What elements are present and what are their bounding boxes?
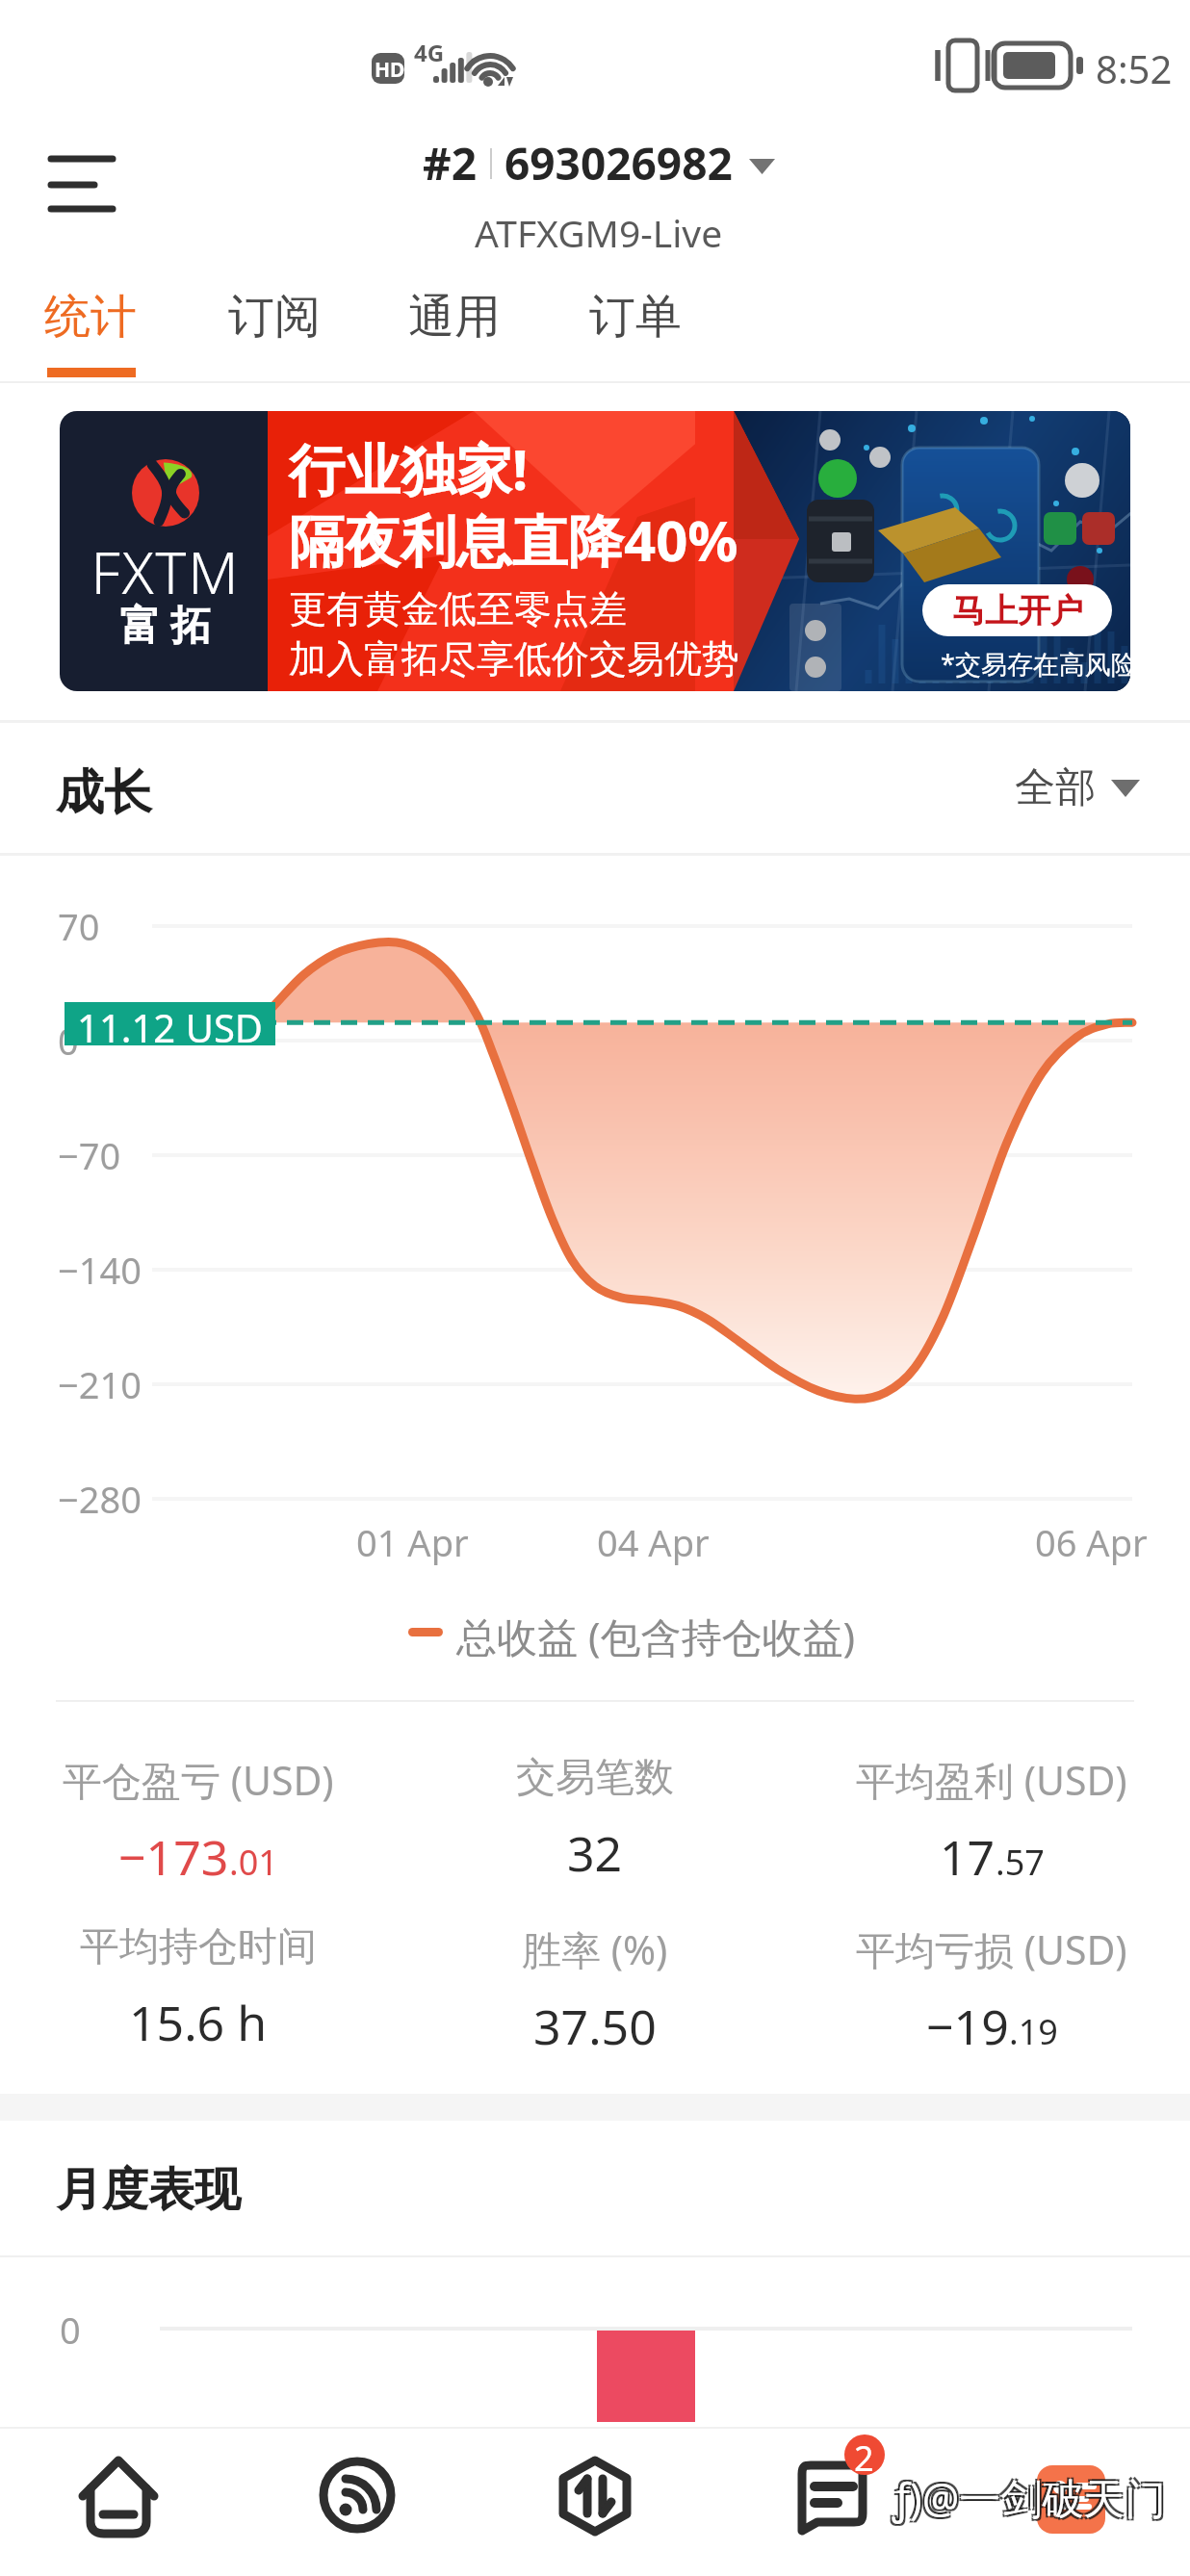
staticText: −140 <box>58 1245 142 1295</box>
staticText: ATFXGM9-Live <box>475 207 723 258</box>
staticText: 统计 <box>44 288 137 346</box>
staticText: HD <box>375 56 405 84</box>
staticText: ƒ)@一剑破天门 <box>894 2467 1169 2524</box>
button[interactable]: 通用 <box>379 270 530 381</box>
staticText: 15.6 h <box>129 1990 268 2055</box>
button[interactable]: Signals <box>297 2433 416 2552</box>
staticText: .57 <box>996 1839 1045 1886</box>
button[interactable]: Menu <box>19 125 144 231</box>
staticText: 平均亏损 (USD) <box>856 1922 1127 1976</box>
staticText: 37.50 <box>533 1994 657 2059</box>
staticText: .01 <box>229 1839 278 1886</box>
button[interactable]: FXTM <box>60 411 1130 691</box>
staticText: 01 Apr <box>356 1517 469 1567</box>
staticText: 0 <box>58 1016 79 1066</box>
staticText: 月度表现 <box>56 2161 241 2219</box>
staticText: −19 <box>926 1994 1009 2059</box>
button[interactable]: 全部 <box>1015 762 1140 813</box>
staticText: 32 <box>567 1820 623 1886</box>
staticText: 更有黄金低至零点差 <box>289 585 627 632</box>
staticText: 通用 <box>408 288 501 346</box>
button[interactable]: Messages <box>772 2433 892 2552</box>
staticText: −280 <box>58 1474 142 1524</box>
staticText: 0 <box>60 2305 81 2355</box>
staticText: .19 <box>1009 2008 1058 2055</box>
staticText: FXTM <box>62 532 270 611</box>
staticText: 富 拓 <box>62 596 270 651</box>
staticText: 2 <box>854 2434 874 2482</box>
staticText: *交易存在高风险 <box>941 646 1130 682</box>
staticText: 平仓盈亏 (USD) <box>63 1753 334 1807</box>
button[interactable]: 统计 <box>15 270 166 381</box>
button[interactable]: 订单 <box>560 270 711 381</box>
button[interactable]: Trade <box>535 2433 655 2552</box>
staticText: −173 <box>118 1824 229 1890</box>
staticText: 订阅 <box>228 288 321 346</box>
staticText: 全部 <box>1015 762 1096 813</box>
button[interactable]: 马上开户 <box>922 584 1112 636</box>
staticText: 06 Apr <box>1035 1517 1148 1567</box>
button[interactable]: Home <box>59 2433 178 2552</box>
staticText: 交易笔数 <box>516 1753 674 1803</box>
button[interactable]: 订阅 <box>199 270 349 381</box>
staticText: 成长 <box>56 762 152 823</box>
staticText: 70 <box>58 901 100 951</box>
staticText: 隔夜利息直降40% <box>289 502 738 578</box>
staticText: 胜率 (%) <box>522 1922 668 1976</box>
staticText: 平均持仓时间 <box>80 1922 317 1972</box>
staticText: ƒ)@一剑破天门 <box>894 2471 1169 2528</box>
staticText: ƒ)@一剑破天门 <box>892 2469 1167 2526</box>
staticText: 马上开户 <box>952 590 1083 631</box>
staticText: 17 <box>940 1824 996 1890</box>
staticText: ƒ)@一剑破天门 <box>891 2467 1165 2524</box>
staticText: ƒ)@一剑破天门 <box>891 2471 1165 2528</box>
staticText: −210 <box>58 1359 142 1409</box>
staticText: #2 <box>423 133 478 193</box>
staticText: 693026982 <box>504 133 733 193</box>
staticText: 8:52 <box>1096 42 1173 94</box>
staticText: 总收益 (包含持仓收益) <box>456 1609 856 1663</box>
staticText: 行业独家! <box>289 430 529 506</box>
staticText: 11.12 USD <box>77 1001 264 1044</box>
staticText: 平均盈利 (USD) <box>856 1753 1127 1807</box>
staticText: 加入富拓尽享低价交易优势 <box>289 635 739 683</box>
staticText: 4G <box>414 37 445 68</box>
staticText: 订单 <box>589 288 682 346</box>
staticText: 04 Apr <box>597 1517 710 1567</box>
staticText: −70 <box>58 1130 121 1180</box>
button[interactable]: #2 <box>417 133 781 193</box>
